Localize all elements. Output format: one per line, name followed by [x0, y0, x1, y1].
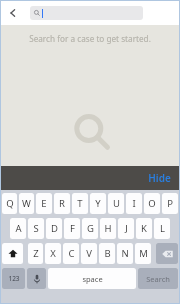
button[interactable]: F	[64, 218, 80, 239]
staticText: K	[141, 222, 147, 235]
staticText: I	[132, 197, 136, 210]
button[interactable]: Back	[1, 1, 25, 25]
staticText: F	[70, 222, 75, 235]
button[interactable]: Q	[2, 193, 17, 214]
staticText: space	[82, 274, 103, 284]
staticText: V	[86, 247, 92, 260]
button[interactable]: Hide	[140, 167, 179, 189]
staticText: U	[113, 197, 120, 210]
button[interactable]: B	[99, 243, 115, 264]
staticText: 123	[8, 274, 20, 283]
button[interactable]: J	[118, 218, 134, 239]
staticText: M	[139, 247, 148, 260]
button[interactable]: M	[135, 243, 151, 264]
button[interactable]: X	[45, 243, 61, 264]
button[interactable]: H	[100, 218, 116, 239]
staticText: P	[167, 197, 173, 210]
button[interactable]: Z	[28, 243, 43, 264]
button[interactable]: N	[117, 243, 133, 264]
button[interactable]: K	[136, 218, 152, 239]
staticText: R	[59, 197, 65, 210]
staticText: Y	[95, 197, 101, 210]
button[interactable]: Shift	[2, 243, 23, 264]
staticText: Hide	[148, 171, 171, 185]
staticText: C	[68, 247, 75, 260]
button[interactable]: L	[154, 218, 170, 239]
button[interactable]: Search	[138, 268, 178, 289]
button[interactable]: Y	[90, 193, 106, 214]
staticText: T	[77, 197, 83, 210]
button[interactable]: P	[162, 193, 178, 214]
button[interactable]: V	[81, 243, 97, 264]
staticText: H	[104, 222, 112, 235]
button[interactable]: Backspace	[156, 243, 178, 264]
button[interactable]: U	[108, 193, 124, 214]
staticText: W	[22, 197, 31, 210]
button[interactable]: Voice input	[27, 268, 46, 289]
staticText: X	[50, 247, 56, 260]
button[interactable]: A	[10, 218, 26, 239]
staticText: Q	[6, 197, 14, 210]
staticText: N	[121, 247, 129, 260]
button[interactable]: W	[19, 193, 34, 214]
staticText: Search for a case to get started.	[29, 33, 151, 44]
button[interactable]: E	[36, 193, 52, 214]
button[interactable]: I	[126, 193, 142, 214]
button[interactable]: T	[72, 193, 88, 214]
staticText: G	[87, 222, 94, 235]
staticText: A	[15, 222, 22, 235]
button[interactable]: D	[46, 218, 62, 239]
button[interactable]: space	[48, 268, 136, 289]
staticText: E	[41, 197, 47, 210]
staticText: Search	[146, 274, 170, 284]
staticText: D	[51, 222, 58, 235]
staticText: B	[104, 247, 111, 260]
staticText: J	[125, 222, 128, 235]
button[interactable]: R	[54, 193, 70, 214]
staticText: Z	[33, 247, 39, 260]
staticText: L	[160, 222, 165, 235]
staticText: S	[33, 222, 39, 235]
button[interactable]: S	[28, 218, 44, 239]
button[interactable]: C	[63, 243, 79, 264]
button[interactable]: 123	[2, 268, 25, 289]
button[interactable]	[30, 6, 143, 20]
button[interactable]: G	[82, 218, 98, 239]
button[interactable]: O	[144, 193, 160, 214]
staticText: O	[148, 197, 156, 210]
